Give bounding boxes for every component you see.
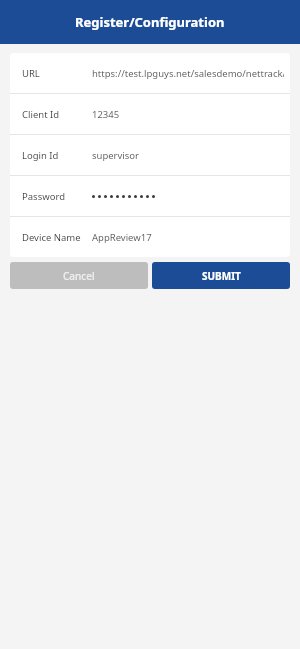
button[interactable]: Device Name bbox=[10, 217, 290, 257]
staticText: Login Id bbox=[22, 149, 59, 162]
button[interactable]: URL bbox=[10, 53, 290, 93]
staticText: 12345 bbox=[92, 108, 120, 121]
button[interactable]: Password bbox=[10, 176, 290, 216]
button[interactable]: Client Id bbox=[10, 94, 290, 134]
staticText: https://test.lpguys.net/salesdemo/nettra… bbox=[92, 67, 284, 80]
staticText: Register/Configuration bbox=[75, 13, 225, 31]
button[interactable]: Login Id bbox=[10, 135, 290, 175]
button[interactable]: SUBMIT bbox=[152, 262, 290, 289]
staticText: Cancel bbox=[63, 269, 95, 283]
button[interactable]: Cancel bbox=[10, 262, 148, 289]
staticText: URL bbox=[22, 67, 40, 80]
staticText: supervisor bbox=[92, 149, 140, 162]
staticText: AppReview17 bbox=[92, 231, 152, 244]
staticText: Password bbox=[22, 190, 65, 203]
staticText: Device Name bbox=[22, 231, 81, 244]
staticText: Client Id bbox=[22, 108, 60, 121]
staticText: SUBMIT bbox=[202, 269, 241, 283]
